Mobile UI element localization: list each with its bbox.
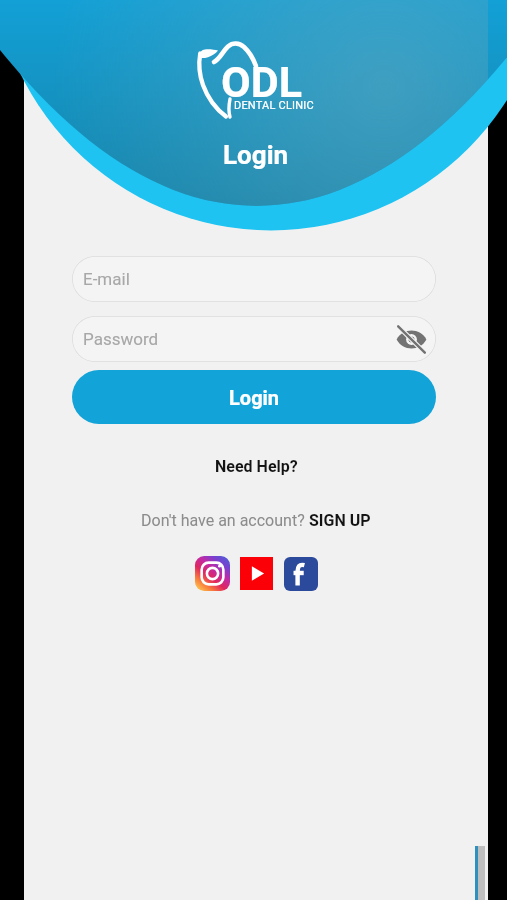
button[interactable]: Password xyxy=(72,316,436,362)
button[interactable]: Instagram xyxy=(195,556,230,591)
staticText: Password xyxy=(83,329,159,349)
staticText: DENTAL CLINIC xyxy=(234,99,314,112)
button[interactable]: SIGN UP xyxy=(309,511,371,530)
button[interactable]: Login xyxy=(72,370,436,424)
staticText: SIGN UP xyxy=(309,511,371,530)
staticText: Login xyxy=(229,386,280,409)
button[interactable]: Need Help? xyxy=(207,454,306,479)
button[interactable]: Facebook xyxy=(284,557,318,591)
button[interactable]: YouTube xyxy=(240,557,273,590)
button[interactable]: E-mail xyxy=(72,256,436,302)
staticText: Need Help? xyxy=(215,457,298,476)
staticText: Don't have an account? xyxy=(141,511,309,530)
staticText: Login xyxy=(223,140,289,170)
staticText: ODL xyxy=(221,57,302,107)
button[interactable]: Show password xyxy=(395,323,427,355)
staticText: E-mail xyxy=(83,269,130,289)
